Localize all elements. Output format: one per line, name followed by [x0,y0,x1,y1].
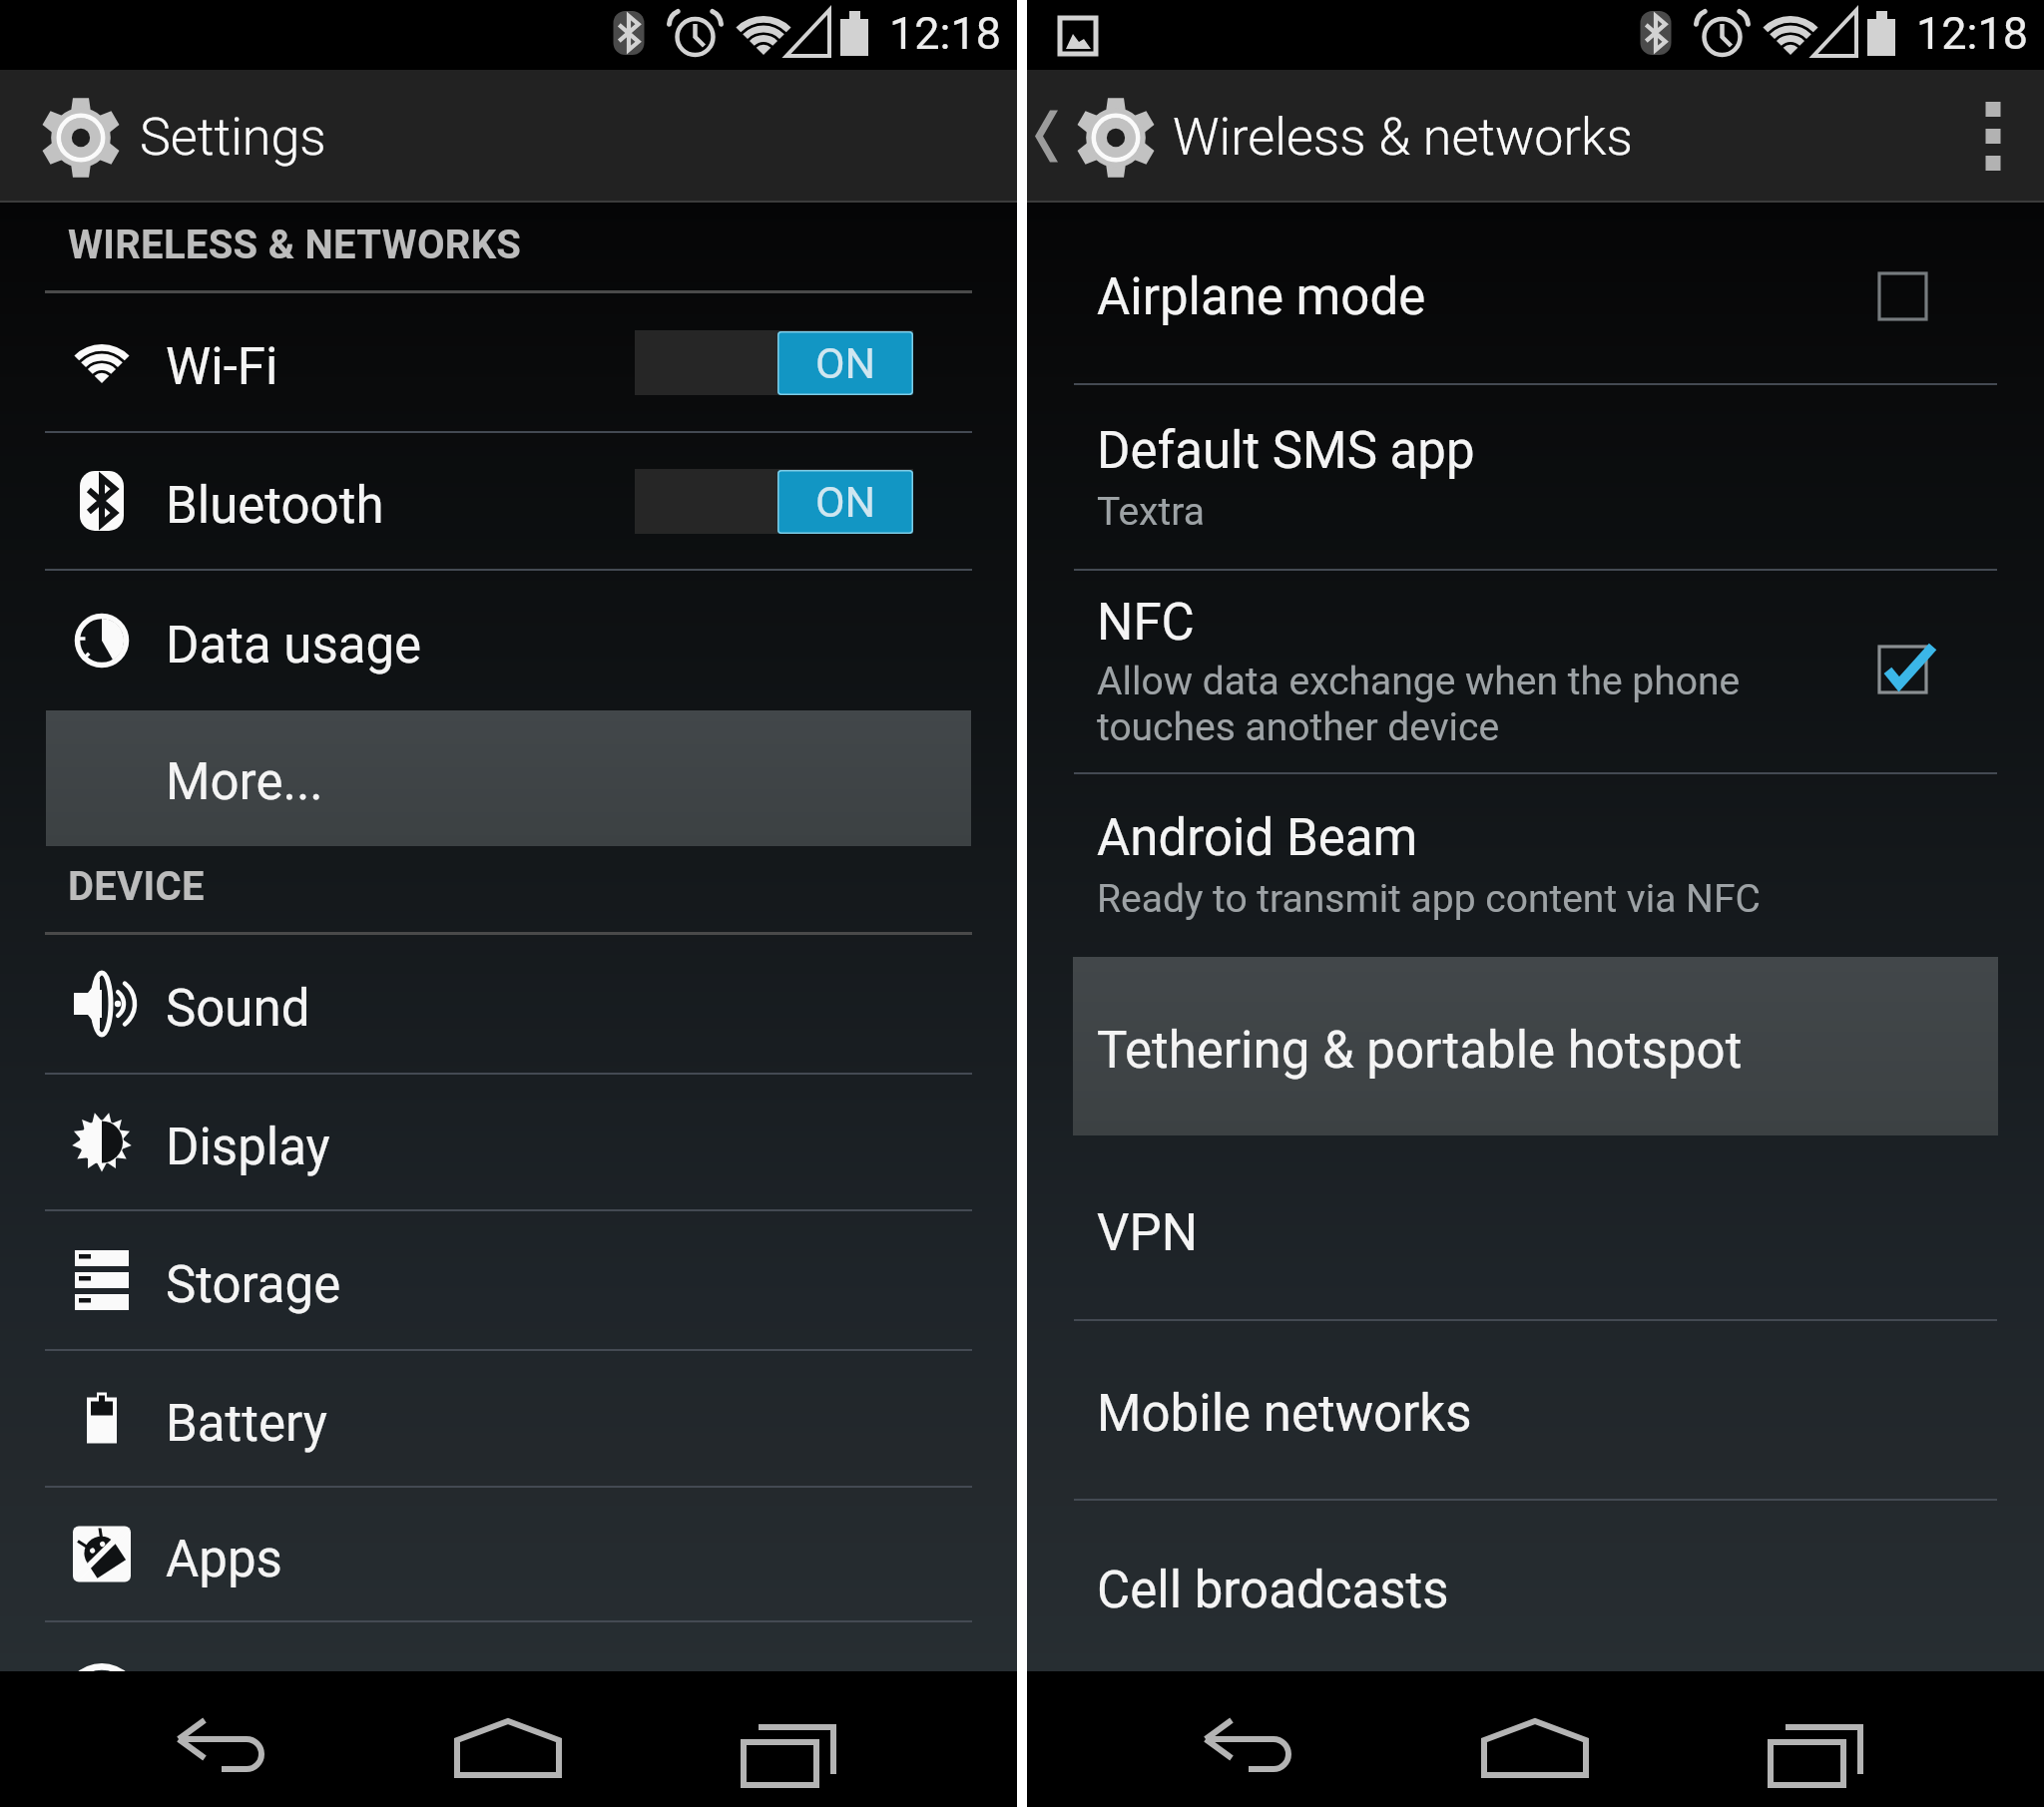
button[interactable]: Tethering & portable hotspot [1073,957,1998,1135]
staticText: ON [815,477,876,527]
button[interactable]: NFC [1027,571,2044,772]
staticText: 12:18 [889,7,1002,60]
button[interactable]: Home [449,1679,569,1799]
button[interactable]: ON [635,469,913,534]
staticText: Textra [1097,489,1205,535]
staticText: Bluetooth [166,476,384,536]
button[interactable]: Recent apps [1768,1684,1877,1794]
staticText: 12:18 [1916,7,2029,60]
button[interactable]: Sound [0,935,1017,1073]
button[interactable]: Bluetooth [0,433,1017,569]
staticText: Android Beam [1097,808,1418,868]
staticText: Settings [140,107,326,168]
staticText: Default SMS app [1097,421,1475,481]
button[interactable]: Wi-Fi [0,293,1017,431]
staticText: touches another device [1097,704,1500,750]
button[interactable]: Navigate up [1027,70,1257,203]
staticText: WIRELESS & NETWORKS [68,222,522,268]
staticText: DEVICE [68,863,205,910]
button[interactable]: Default SMS app [1027,385,2044,569]
button[interactable]: Back [1187,1674,1316,1804]
button[interactable]: Storage [0,1211,1017,1349]
button[interactable]: Apps [0,1488,1017,1620]
button[interactable]: VPN [1027,1138,2044,1319]
staticText: Data usage [166,616,422,676]
staticText: Allow data exchange when the phone [1097,659,1741,704]
button[interactable]: Airplane mode [1027,203,2044,383]
button[interactable]: Home [1476,1679,1596,1799]
staticText: Mobile networks [1097,1384,1472,1444]
button[interactable] [0,1622,1017,1671]
button[interactable]: Recent apps [741,1684,850,1794]
staticText: Cell broadcasts [1097,1561,1449,1620]
staticText: VPN [1097,1203,1199,1263]
button[interactable]: Settings [0,70,230,203]
button[interactable]: ON [635,330,913,395]
staticText: Storage [166,1255,341,1315]
button[interactable]: Cell broadcasts [1027,1501,2044,1671]
staticText: Tethering & portable hotspot [1097,1021,1743,1081]
button[interactable]: Display [0,1075,1017,1209]
button[interactable]: Mobile networks [1027,1321,2044,1499]
staticText: ON [815,338,876,388]
staticText: Sound [166,979,310,1039]
button[interactable]: Data usage [0,571,1017,710]
staticText: Apps [166,1530,282,1589]
button[interactable]: Back [160,1674,289,1804]
staticText: Display [166,1118,330,1177]
staticText: Wireless & networks [1173,107,1633,168]
button[interactable]: Battery [0,1351,1017,1486]
staticText: NFC [1097,593,1195,653]
staticText: Airplane mode [1097,267,1426,327]
button[interactable]: More... [46,710,971,846]
staticText: Battery [166,1394,327,1454]
staticText: More... [166,752,323,812]
staticText: Ready to transmit app content via NFC [1097,876,1761,922]
staticText: Wi-Fi [166,337,278,397]
button[interactable]: Android Beam [1027,774,2044,954]
button[interactable]: More options [1934,70,2044,203]
